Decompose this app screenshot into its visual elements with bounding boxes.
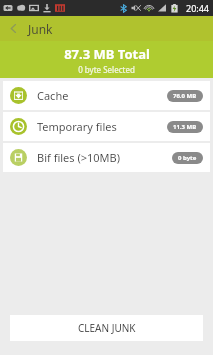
button[interactable]: Temporary files [3,112,210,141]
staticText: 11.3 MB [173,123,197,131]
staticText: 20:44 [186,2,210,14]
button[interactable]: Back [0,16,213,41]
staticText: 0 byte [178,154,197,162]
button[interactable]: CLEAN JUNK [10,315,203,341]
button[interactable]: Bif files (>10MB) [3,143,210,172]
staticText: 87.3 MB Total [64,45,150,63]
staticText: Cache [37,88,69,103]
staticText: Temporary files [37,119,117,134]
staticText: Junk [28,21,53,37]
button[interactable]: Cache [3,81,210,110]
staticText: 0 byte Selected [78,64,135,75]
staticText: 76.0 MB [173,92,197,100]
staticText: CLEAN JUNK [78,321,136,335]
staticText: Bif files (>10MB) [37,150,121,165]
